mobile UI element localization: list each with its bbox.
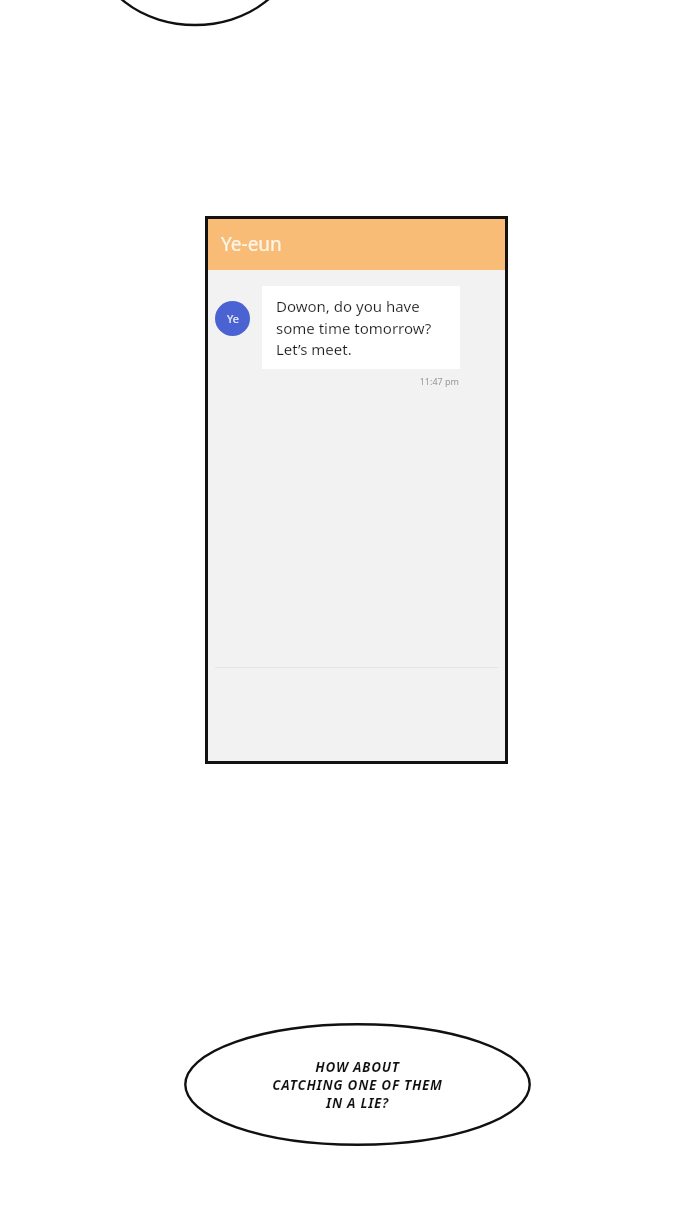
staticText: HOW ABOUT [315,1058,400,1076]
button[interactable]: Ye [215,286,496,387]
staticText: IN A LIE? [326,1094,389,1112]
staticText: Ye-eun [221,231,282,257]
staticText: 11:47 pm [262,375,459,387]
staticText: Ye [227,311,239,326]
staticText: CATCHING ONE OF THEM [272,1076,443,1094]
staticText: Dowon, do you have some time tomorrow? L… [276,296,446,359]
button[interactable]: Ye-eun [208,219,505,270]
